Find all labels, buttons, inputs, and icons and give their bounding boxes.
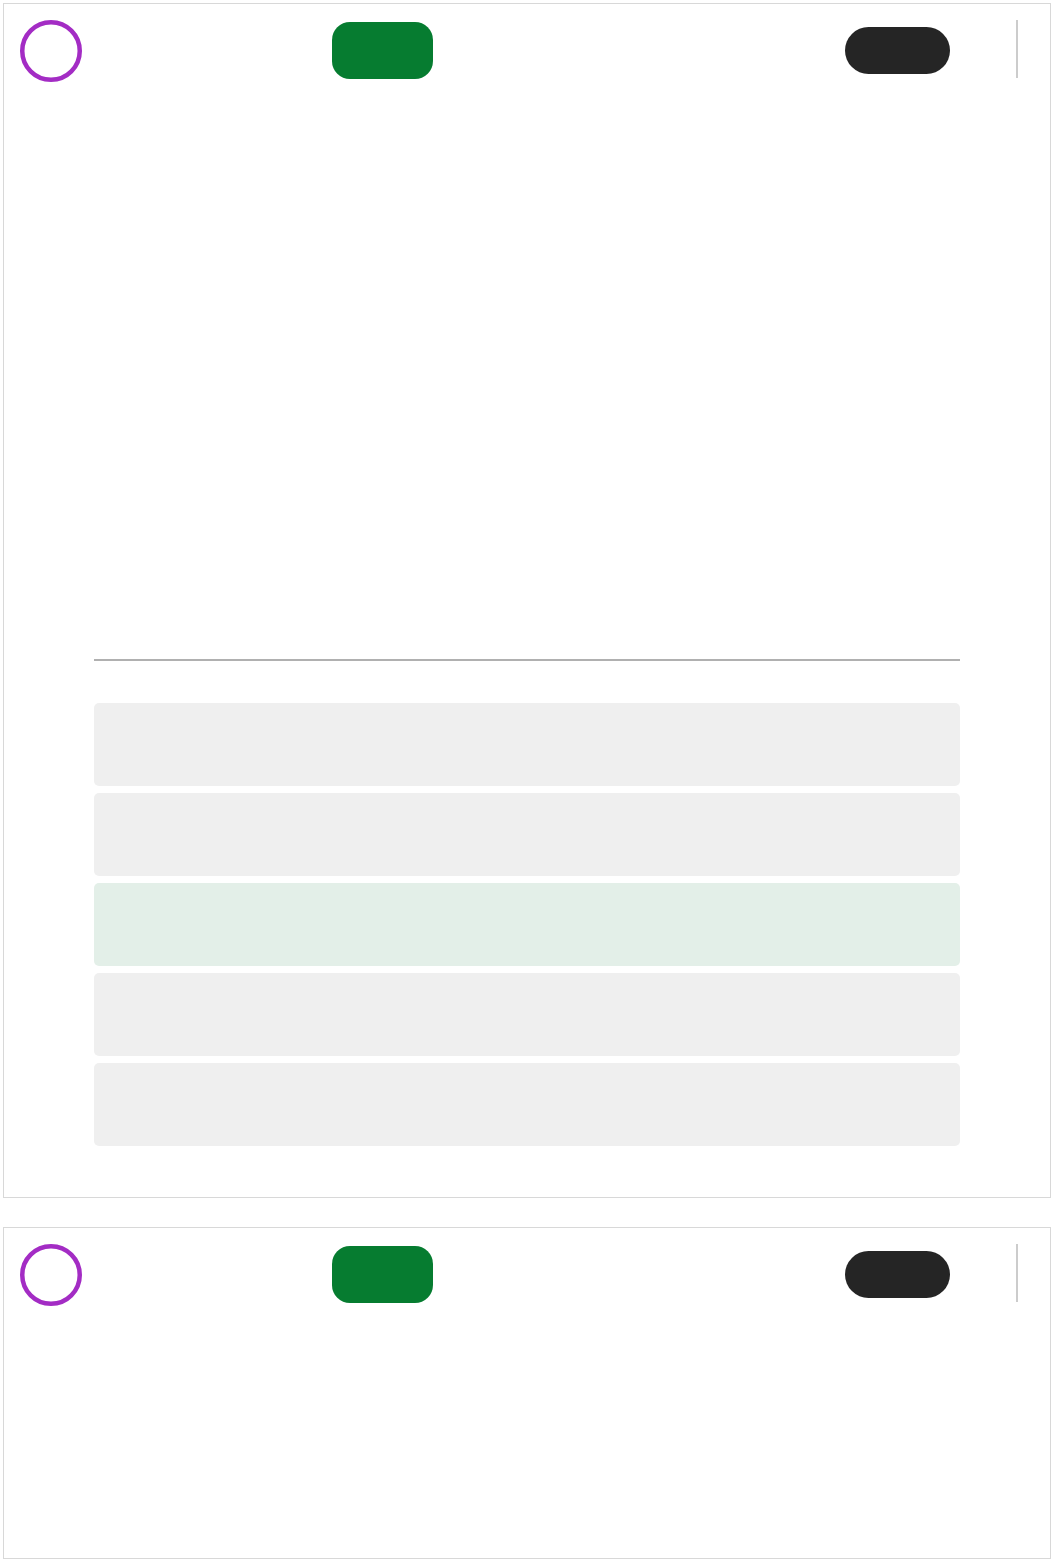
button[interactable]: Menu (845, 27, 950, 74)
button[interactable]: Menu (845, 1251, 950, 1298)
button[interactable]: Primary action (332, 1246, 433, 1303)
button[interactable]: Profile (20, 1244, 82, 1306)
button[interactable]: Primary action (332, 22, 433, 79)
button[interactable]: Profile (20, 20, 82, 82)
